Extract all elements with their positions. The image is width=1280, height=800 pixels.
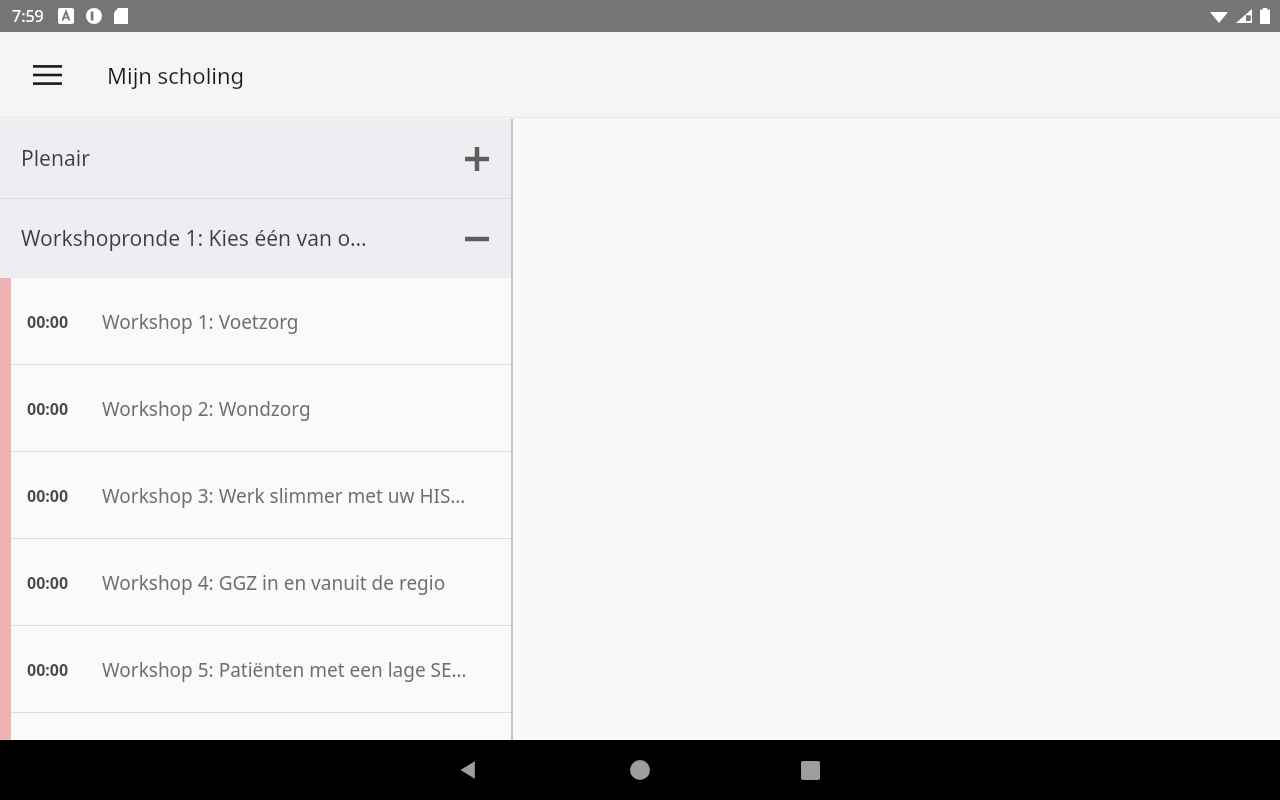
staticText: Workshop 2: Wondzorg [102,396,311,422]
staticText: Workshop 5: Patiënten met een lage SE… [102,657,467,683]
button[interactable]: 00:00 [0,278,511,365]
button[interactable]: Expand section [453,135,501,183]
staticText: Mijn scholing [107,60,245,90]
staticText: Plenair [21,144,90,173]
button[interactable]: Home [612,742,668,798]
staticText: 7:59 [12,5,44,27]
button[interactable] [0,713,511,740]
staticText: Workshop 3: Werk slimmer met uw HIS… [102,483,466,509]
button[interactable]: Workshopronde 1: Kies één van o… [0,199,511,278]
staticText: 00:00 [27,485,69,507]
button[interactable]: Plenair [0,119,511,198]
button[interactable]: 00:00 [0,452,511,539]
button[interactable]: Collapse section [453,215,501,263]
staticText: Workshop 4: GGZ in en vanuit de regio [102,570,446,596]
button[interactable]: Back [440,742,496,798]
staticText: 00:00 [27,311,69,333]
staticText: 00:00 [27,659,69,681]
button[interactable]: 00:00 [0,365,511,452]
staticText: Workshopronde 1: Kies één van o… [21,224,367,253]
button[interactable]: 00:00 [0,626,511,713]
staticText: Workshop 1: Voetzorg [102,309,299,335]
button[interactable]: Recent apps [782,742,838,798]
button[interactable]: 00:00 [0,539,511,626]
staticText: 00:00 [27,398,69,420]
button[interactable]: Open navigation menu [21,48,74,101]
staticText: 00:00 [27,572,69,594]
